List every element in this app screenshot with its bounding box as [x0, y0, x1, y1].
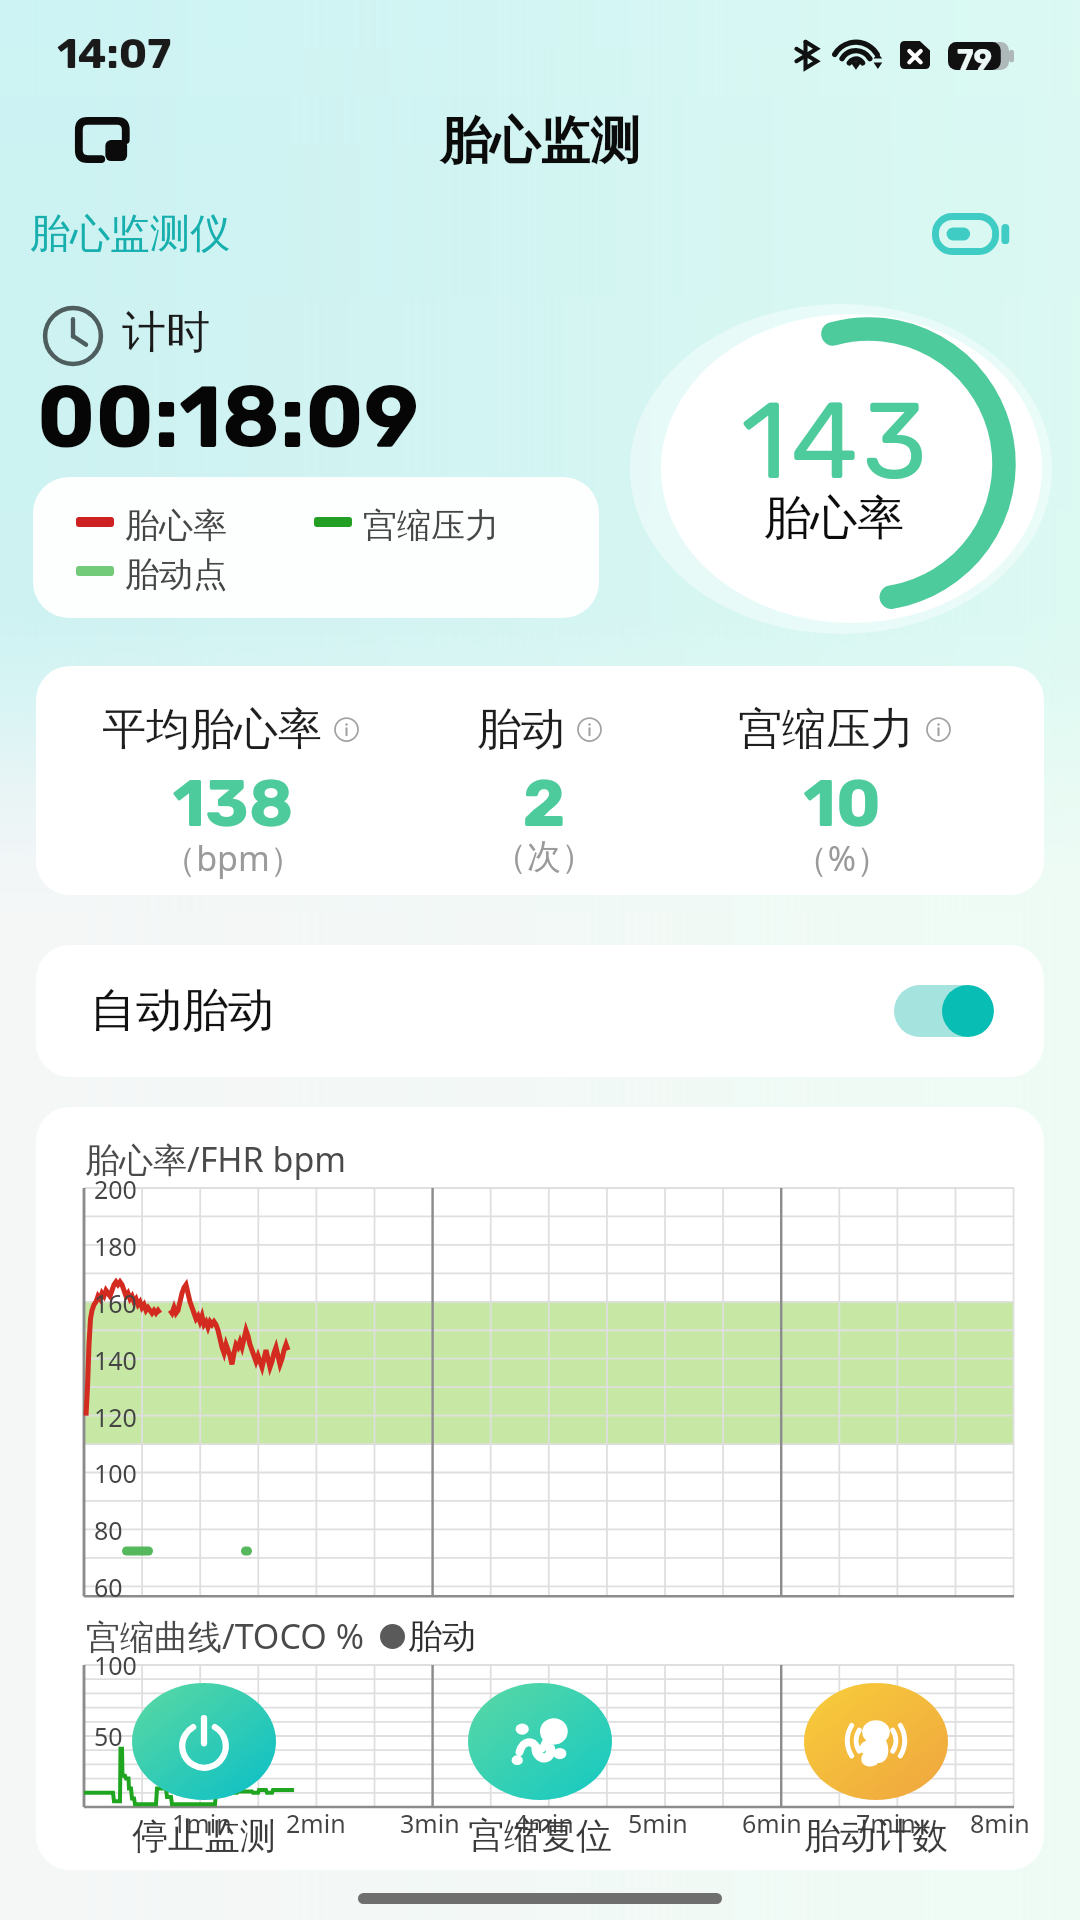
staticText: 宫缩复位: [430, 1813, 650, 1858]
staticText: 79: [948, 43, 1001, 77]
staticText: 00:18:09: [37, 367, 419, 469]
staticText: 胎心率: [125, 504, 227, 547]
button[interactable]: Stop monitoring: [132, 1683, 276, 1800]
staticText: 140: [94, 1343, 137, 1377]
staticText: 50: [94, 1719, 123, 1753]
staticText: 180: [94, 1229, 137, 1263]
button[interactable]: 平均胎心率: [36, 666, 1044, 895]
staticText: （次）: [304, 835, 784, 878]
staticText: 停止监测: [94, 1813, 314, 1858]
staticText: 200: [94, 1172, 137, 1206]
staticText: 14:07: [57, 29, 172, 79]
staticText: 2min: [286, 1806, 346, 1840]
button[interactable]: 自动胎动: [36, 945, 1044, 1077]
staticText: 宫缩压力: [363, 504, 499, 547]
staticText: 60: [94, 1570, 123, 1604]
staticText: 胎心监测仪: [30, 208, 230, 258]
staticText: 100: [94, 1456, 137, 1490]
staticText: 80: [94, 1513, 123, 1547]
staticText: 5min: [628, 1806, 688, 1840]
staticText: 160: [94, 1286, 137, 1320]
staticText: 2: [304, 764, 784, 842]
staticText: 胎心率/FHR bpm: [85, 1136, 347, 1182]
staticText: 120: [94, 1400, 137, 1434]
staticText: 胎动计数: [766, 1813, 986, 1858]
staticText: 胎动点: [125, 553, 227, 596]
staticText: 8min: [970, 1806, 1030, 1840]
staticText: 胎心监测: [0, 110, 1080, 173]
staticText: 自动胎动: [90, 982, 274, 1040]
staticText: （%）: [602, 835, 1044, 881]
staticText: 100: [94, 1648, 137, 1682]
staticText: 4min: [514, 1806, 574, 1840]
staticText: 3min: [400, 1806, 460, 1840]
staticText: （bpm）: [36, 835, 473, 881]
staticText: 计时: [122, 305, 210, 360]
button[interactable]: Reset contraction: [468, 1683, 612, 1800]
staticText: 胎动: [477, 702, 565, 757]
staticText: 143: [662, 377, 1010, 505]
staticText: 7min: [856, 1806, 916, 1840]
staticText: 10: [602, 764, 1044, 842]
staticText: 平均胎心率: [102, 702, 322, 757]
staticText: 1min: [172, 1806, 232, 1840]
staticText: 胎心率: [660, 489, 1008, 548]
staticText: 6min: [742, 1806, 802, 1840]
button[interactable]: Count fetal movement: [804, 1683, 948, 1800]
staticText: 胎动: [408, 1615, 476, 1658]
staticText: 宫缩曲线/TOCO %: [86, 1613, 364, 1659]
staticText: 138: [36, 764, 473, 842]
staticText: 宫缩压力: [738, 702, 914, 757]
button[interactable]: Picture in picture: [62, 98, 146, 182]
